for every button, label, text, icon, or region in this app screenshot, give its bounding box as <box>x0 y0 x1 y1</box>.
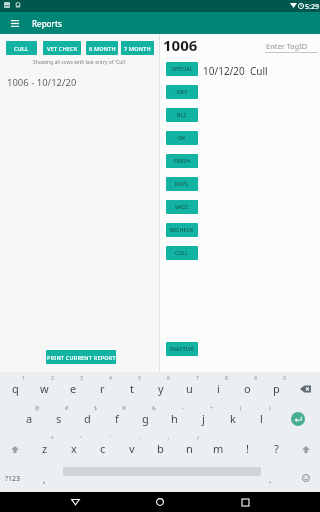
button[interactable]: & <box>131 404 160 434</box>
button[interactable]: # <box>44 404 73 434</box>
button[interactable]: * <box>30 434 59 464</box>
staticText: d <box>84 411 91 426</box>
button[interactable]: 6 <box>146 374 175 404</box>
button[interactable]: 6 MONTH <box>86 41 118 55</box>
staticText: DAYS <box>175 181 189 188</box>
staticText: " <box>80 435 83 442</box>
button[interactable]: BL2 <box>166 108 198 122</box>
staticText: OK <box>178 135 186 142</box>
button[interactable]: PRINT CURRENT REPORT <box>46 350 116 364</box>
button[interactable]: 3 <box>59 374 88 404</box>
staticText: ( <box>240 405 242 412</box>
staticText: Reports <box>32 18 62 29</box>
button[interactable]: ' <box>88 434 117 464</box>
staticText: a <box>26 411 33 426</box>
staticText: CULL <box>14 45 29 52</box>
staticText: 4 <box>109 375 112 382</box>
button[interactable]: + <box>189 404 218 434</box>
button[interactable]: Back <box>65 492 85 512</box>
button[interactable]: 1 <box>0 374 30 404</box>
button[interactable]: FRESH <box>166 154 198 168</box>
button[interactable]: ?123 <box>0 464 26 492</box>
staticText: 5 <box>138 375 141 382</box>
staticText: 1006 <box>163 35 198 55</box>
staticText: l <box>260 411 263 426</box>
button[interactable]: OK <box>166 131 198 145</box>
button[interactable]: Delete <box>291 374 320 404</box>
staticText: , <box>43 473 46 485</box>
button[interactable]: VET CHECK <box>43 41 81 55</box>
button[interactable]: ) <box>247 404 276 434</box>
button[interactable]: 2 <box>30 374 59 404</box>
staticText: e <box>70 381 77 396</box>
button[interactable]: - <box>160 404 189 434</box>
staticText: $ <box>94 405 97 412</box>
staticText: g <box>142 411 149 426</box>
button[interactable]: ; <box>146 434 175 464</box>
button[interactable]: 8 <box>204 374 233 404</box>
staticText: 7 <box>196 375 199 382</box>
button[interactable]: 7 <box>175 374 204 404</box>
button[interactable]: ( <box>218 404 247 434</box>
button[interactable]: VACC <box>166 200 198 214</box>
staticText: CULL <box>175 250 189 257</box>
staticText: q <box>12 381 19 396</box>
button[interactable]: / <box>175 434 204 464</box>
button[interactable]: DRY <box>166 85 198 99</box>
button[interactable]: SPECIAL <box>166 62 198 76</box>
button[interactable]: " <box>59 434 88 464</box>
staticText: Showing all cows with last entry of 'Cul… <box>0 59 159 66</box>
button[interactable]: % <box>102 404 131 434</box>
staticText: 2 <box>51 375 54 382</box>
staticText: ! <box>246 441 249 456</box>
button[interactable]: 7 MONTH <box>121 41 154 55</box>
staticText: DRY <box>177 89 188 96</box>
button[interactable]: ! <box>233 434 262 464</box>
staticText: u <box>186 381 193 396</box>
button[interactable]: m <box>204 434 233 464</box>
staticText: p <box>273 381 280 396</box>
button[interactable]: Recent apps <box>235 492 255 512</box>
staticText: ' <box>110 435 112 442</box>
button[interactable]: Shift <box>291 434 320 464</box>
staticText: . <box>269 473 272 485</box>
button[interactable]: , <box>32 464 56 492</box>
button[interactable]: 9 <box>233 374 262 404</box>
staticText: 3 <box>80 375 83 382</box>
button[interactable]: Open navigation menu <box>4 12 25 34</box>
button[interactable]: $ <box>73 404 102 434</box>
button[interactable]: DAYS <box>166 177 198 191</box>
staticText: 8 <box>225 375 228 382</box>
button[interactable]: ? <box>262 434 291 464</box>
staticText: 6 MONTH <box>89 45 116 52</box>
button[interactable]: Enter <box>276 404 320 434</box>
button[interactable]: RECHECK <box>166 223 198 237</box>
staticText: VET CHECK <box>47 45 78 52</box>
button[interactable]: . <box>258 464 282 492</box>
button[interactable]: 5 <box>117 374 146 404</box>
staticText: INACTIVE <box>170 346 195 353</box>
button[interactable]: : <box>117 434 146 464</box>
staticText: f <box>115 411 119 426</box>
button[interactable]: 4 <box>88 374 117 404</box>
staticText: 6 <box>167 375 170 382</box>
staticText: 5:29 <box>305 2 319 12</box>
button[interactable]: Emoji <box>294 464 318 492</box>
staticText: 7 MONTH <box>124 45 151 52</box>
staticText: + <box>210 405 213 412</box>
button[interactable]: CULL <box>166 246 198 260</box>
button[interactable]: Home <box>150 492 170 512</box>
button[interactable]: INACTIVE <box>166 342 198 356</box>
staticText: h <box>171 411 178 426</box>
button[interactable]: @ <box>15 404 44 434</box>
button[interactable]: 0 <box>262 374 291 404</box>
staticText: s <box>56 411 62 426</box>
staticText: z <box>42 441 48 456</box>
button[interactable]: Shift <box>0 434 30 464</box>
staticText: k <box>230 411 236 426</box>
button[interactable]: CULL <box>6 41 37 55</box>
staticText: SPECIAL <box>172 66 193 73</box>
staticText: x <box>71 441 77 456</box>
staticText: FRESH <box>174 158 191 165</box>
